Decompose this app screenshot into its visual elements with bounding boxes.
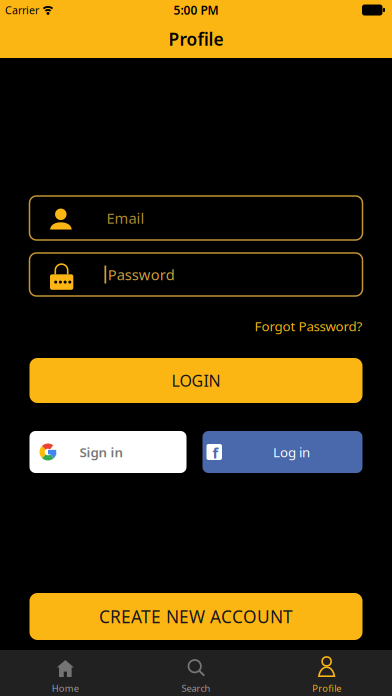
button[interactable]: Forgot Password? bbox=[254, 317, 362, 335]
staticText: Forgot Password? bbox=[254, 317, 362, 335]
button[interactable]: Search bbox=[131, 650, 261, 696]
staticText: Password bbox=[108, 265, 175, 284]
staticText: Profile bbox=[168, 27, 223, 50]
staticText: Carrier bbox=[5, 3, 39, 17]
staticText: Home bbox=[52, 682, 79, 694]
button[interactable]: Profile bbox=[261, 650, 392, 696]
staticText: Search bbox=[181, 682, 210, 694]
staticText: f bbox=[212, 443, 218, 463]
button[interactable]: Home bbox=[0, 650, 131, 696]
staticText: 5:00 PM bbox=[173, 2, 218, 18]
button[interactable]: Sign in bbox=[29, 431, 186, 473]
staticText: CREATE NEW ACCOUNT bbox=[99, 605, 293, 628]
button[interactable]: LOGIN bbox=[29, 358, 362, 403]
staticText: Profile bbox=[312, 682, 341, 694]
staticText: Log in bbox=[273, 443, 310, 461]
staticText: Email bbox=[106, 208, 144, 228]
staticText: LOGIN bbox=[171, 370, 220, 391]
staticText: Sign in bbox=[79, 443, 123, 461]
button[interactable]: CREATE NEW ACCOUNT bbox=[29, 593, 362, 640]
button[interactable]: f bbox=[202, 431, 362, 473]
